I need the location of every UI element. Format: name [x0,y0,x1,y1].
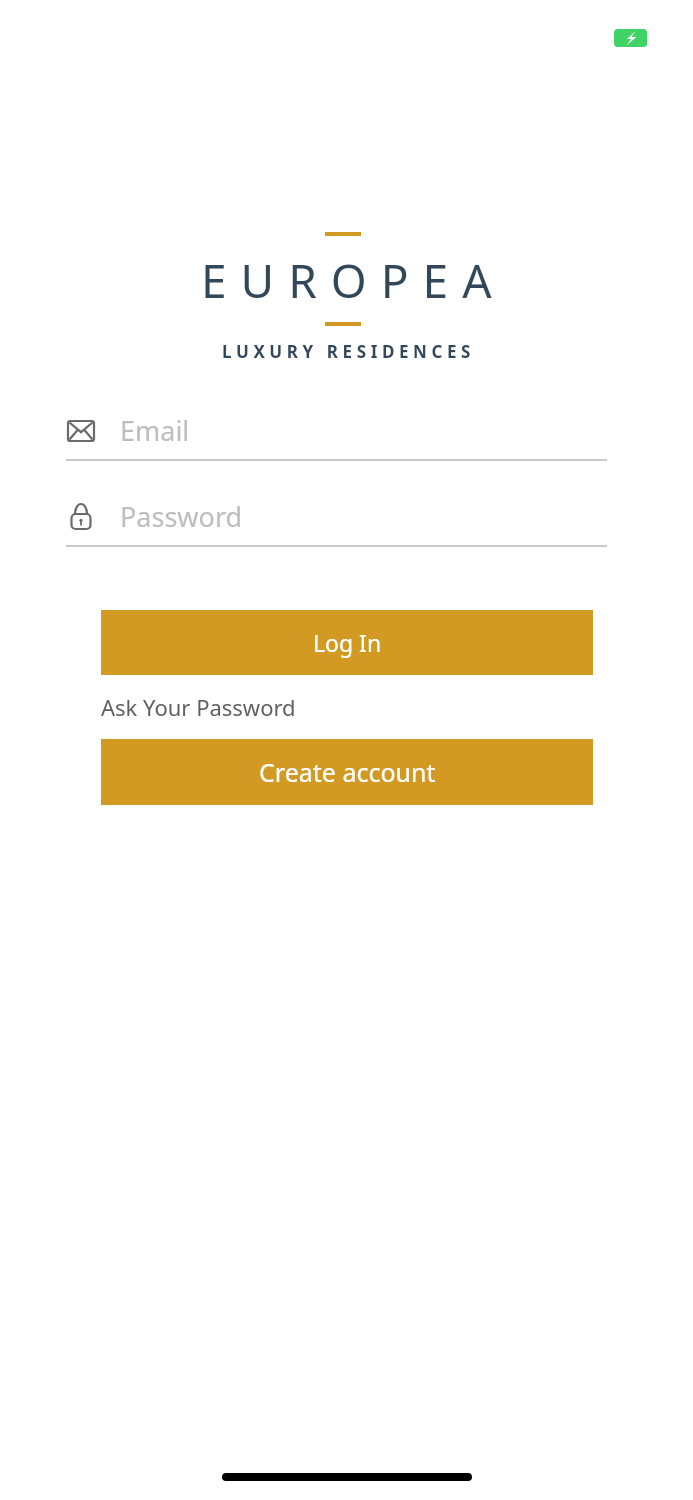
staticText: Password [120,498,243,535]
button[interactable]: Password [66,494,607,547]
staticText: Ask Your Password [101,692,296,722]
button[interactable]: Create account [101,739,593,805]
staticText: Log In [313,627,382,658]
other: Battery charging [614,28,650,48]
button[interactable]: Ask Your Password [101,692,593,722]
button[interactable]: Email [66,408,607,461]
staticText: Email [120,412,190,449]
button[interactable]: Log In [101,610,593,675]
other: Email [66,416,96,446]
staticText: Create account [259,755,436,789]
other: Password [66,502,96,532]
staticText: LUXURY RESIDENCES [222,340,476,363]
staticText: EUROPEA [201,249,506,312]
